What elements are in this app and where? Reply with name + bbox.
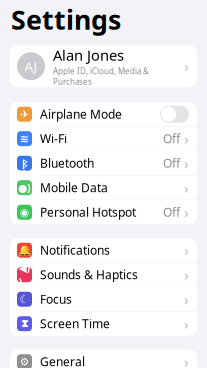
staticText: Screen Time <box>40 316 110 332</box>
staticText: Personal Hotspot <box>40 204 136 220</box>
button[interactable]: 🔔 <box>10 238 197 262</box>
button[interactable]: ✈ <box>10 102 197 126</box>
staticText: › <box>184 314 189 333</box>
button[interactable]: ((●)) <box>10 176 197 200</box>
staticText: Focus <box>40 291 72 307</box>
staticText: Settings <box>11 2 121 37</box>
staticText: Wi-Fi <box>40 131 67 147</box>
staticText: Mobile Data <box>40 180 108 196</box>
staticText: › <box>184 178 189 197</box>
staticText: ≋ <box>20 133 29 145</box>
staticText: 🔔 <box>18 244 31 256</box>
staticText: ((●)) <box>18 166 31 209</box>
button[interactable]: ≋ <box>10 127 197 151</box>
staticText: General <box>40 354 85 368</box>
button[interactable]: ◀)) <box>10 263 197 287</box>
staticText: › <box>184 129 189 148</box>
staticText: Bluetooth <box>40 155 94 171</box>
staticText: ◉ <box>20 206 29 218</box>
staticText: › <box>184 56 189 76</box>
staticText: ◀)) <box>18 260 30 289</box>
button[interactable]: ⧗ <box>10 312 197 336</box>
button[interactable]: ◉ <box>10 200 197 224</box>
staticText: Sounds & Haptics <box>40 267 138 283</box>
staticText: Airplane Mode <box>40 106 122 122</box>
staticText: › <box>184 289 189 309</box>
staticText: Off <box>163 204 180 220</box>
staticText: Apple ID, iCloud, Media & Purchases <box>53 66 149 87</box>
staticText: Off <box>163 155 180 171</box>
staticText: › <box>184 153 189 173</box>
staticText: › <box>184 202 189 222</box>
staticText: AJ <box>24 57 37 75</box>
staticText: › <box>184 352 189 368</box>
staticText: ✈ <box>20 108 29 120</box>
button[interactable]: ⚙ <box>10 350 197 368</box>
staticText: › <box>184 265 189 284</box>
staticText: ☾ <box>19 293 29 305</box>
staticText: ⚙ <box>19 356 29 368</box>
button[interactable]: ᛒ <box>10 151 197 175</box>
staticText: ⧗ <box>21 318 28 329</box>
staticText: Notifications <box>40 242 110 258</box>
button[interactable]: ☾ <box>10 287 197 311</box>
staticText: ᛒ <box>22 156 27 170</box>
staticText: › <box>184 240 189 260</box>
staticText: Off <box>163 131 180 147</box>
button[interactable]: AJ <box>10 45 197 87</box>
staticText: Alan Jones <box>53 45 124 65</box>
